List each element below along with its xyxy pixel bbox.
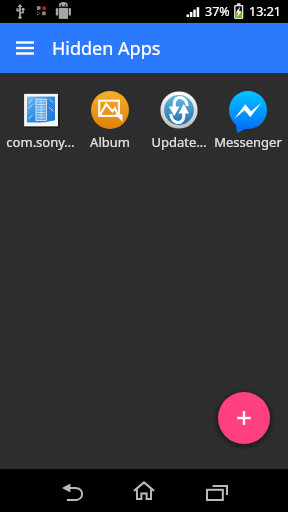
button[interactable]: Back (49, 469, 96, 512)
button[interactable]: Update… (144, 91, 213, 151)
button[interactable]: Messenger (213, 91, 282, 151)
staticText: Update… (151, 133, 207, 151)
button[interactable]: Add (218, 392, 270, 444)
staticText: Album (90, 133, 130, 151)
staticText: Hidden Apps (52, 36, 161, 61)
staticText: 37% (205, 3, 230, 20)
button[interactable]: Home (120, 469, 167, 512)
button[interactable]: Album (75, 91, 144, 151)
staticText: Messenger (214, 133, 282, 151)
button[interactable]: Recents (193, 469, 240, 512)
staticText: 13:21 (249, 3, 281, 20)
staticText: com.sony… (6, 133, 75, 151)
button[interactable]: com.sony… (6, 91, 75, 151)
button[interactable]: Menu (10, 33, 40, 63)
